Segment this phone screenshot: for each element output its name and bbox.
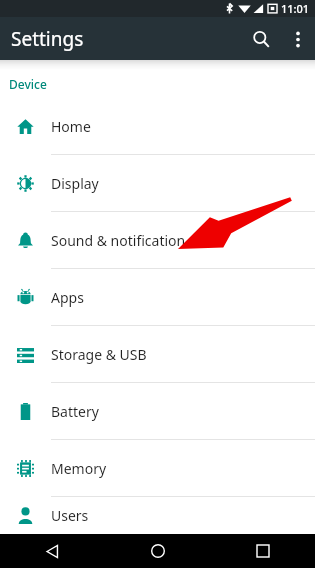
button[interactable]: Apps [0, 269, 315, 326]
staticText: Home [51, 117, 91, 136]
button[interactable]: Memory [0, 440, 315, 497]
staticText: Display [51, 174, 99, 193]
staticText: 11:01 [281, 1, 310, 16]
staticText: Battery [51, 402, 99, 421]
staticText: Users [51, 506, 89, 525]
button[interactable]: Back [0, 534, 105, 568]
button[interactable]: Search [241, 19, 281, 59]
staticText: Settings [11, 26, 84, 52]
staticText: Memory [51, 459, 107, 478]
button[interactable]: Recent apps [210, 534, 315, 568]
staticText: Device [9, 76, 47, 92]
button[interactable]: Sound & notification [0, 212, 315, 269]
button[interactable]: Home [0, 98, 315, 155]
staticText: Sound & notification [51, 231, 186, 250]
button[interactable]: Home [105, 534, 210, 568]
button[interactable]: Users [0, 497, 315, 534]
button[interactable]: More options [281, 22, 315, 56]
staticText: Apps [51, 288, 84, 307]
button[interactable]: Storage & USB [0, 326, 315, 383]
button[interactable]: Display [0, 155, 315, 212]
button[interactable]: Battery [0, 383, 315, 440]
staticText: Storage & USB [51, 345, 147, 364]
